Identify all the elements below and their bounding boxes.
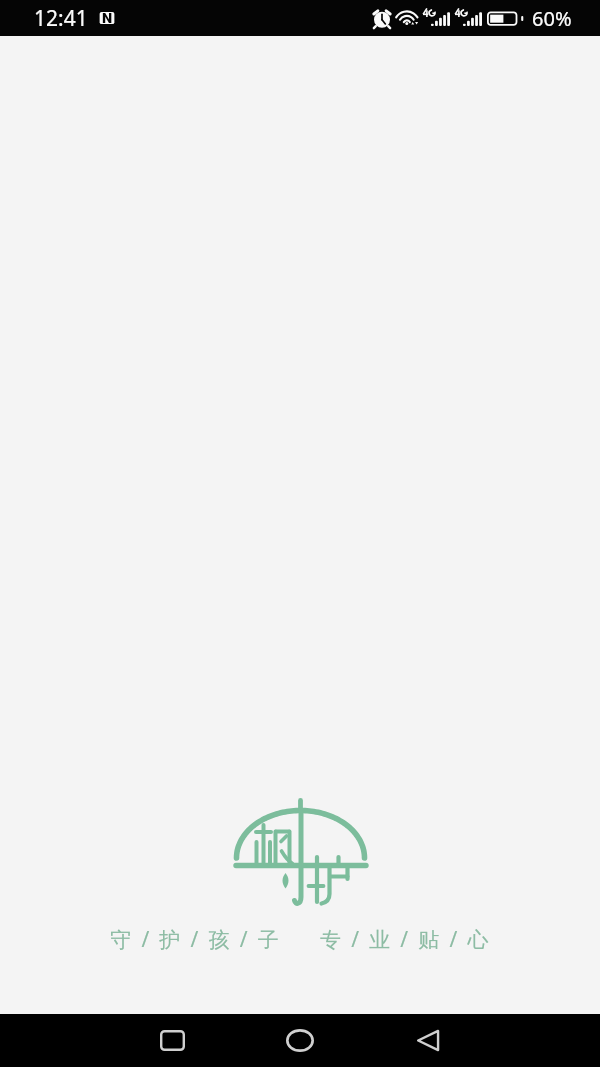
staticText: 60% [532,5,572,32]
button[interactable]: Home [236,1014,364,1067]
staticText: 守 / 护 / 孩 / 子 专 / 业 / 贴 / 心 [110,925,491,954]
staticText: 12:41 [34,4,88,33]
button[interactable]: Back [364,1014,492,1067]
button[interactable]: Recent apps [108,1014,236,1067]
